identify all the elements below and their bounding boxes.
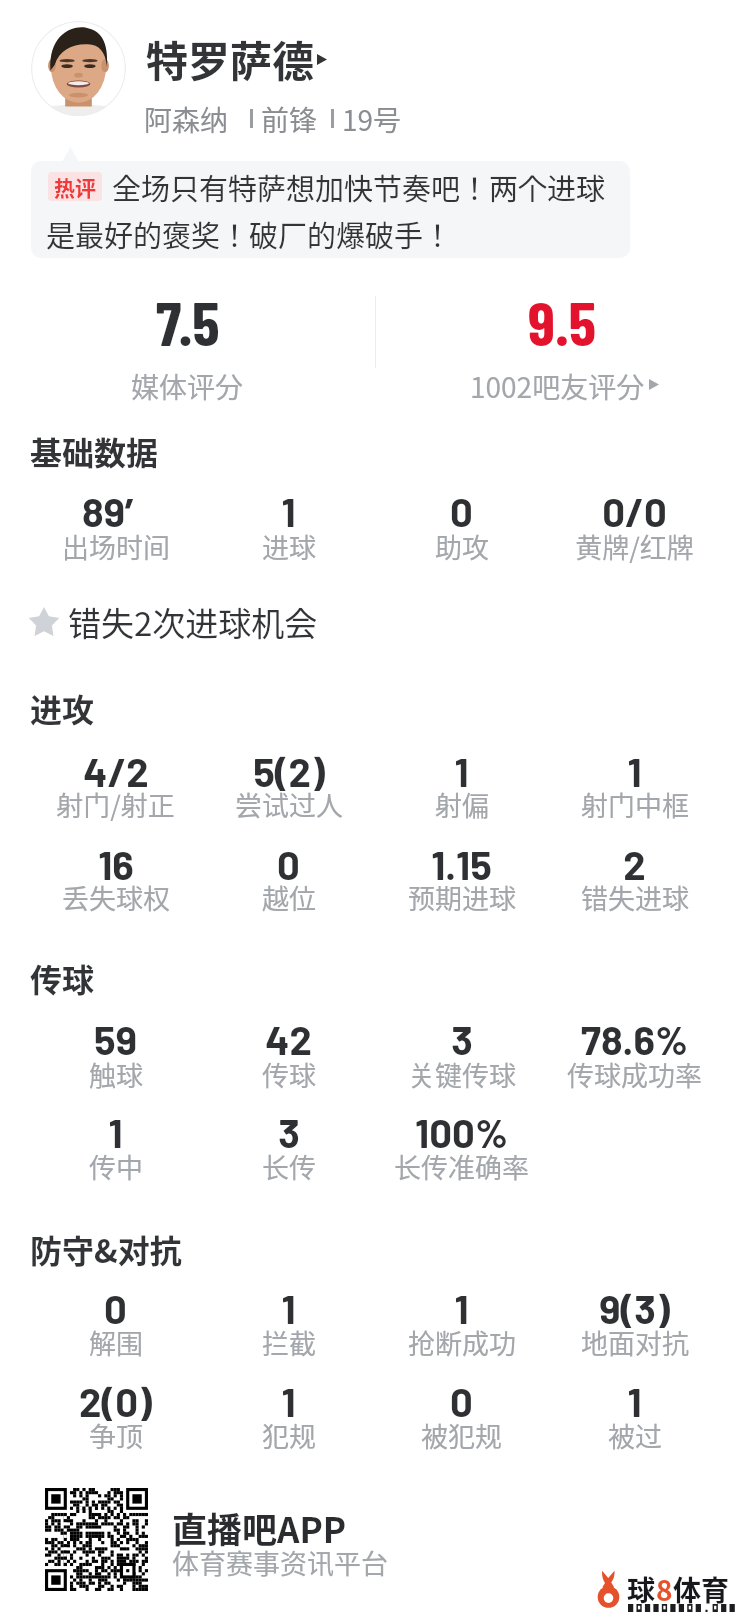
button[interactable]: 特罗萨德 [146, 28, 327, 89]
button[interactable]: Qiuba Sports logo [595, 1566, 745, 1614]
staticText: 8 [656, 1569, 673, 1610]
staticText: 42 [265, 1015, 312, 1063]
button[interactable]: 9.5 [375, 284, 750, 358]
staticText: 传中 [89, 1147, 143, 1186]
staticText: 进球 [262, 527, 316, 566]
staticText: 1 [454, 747, 469, 795]
staticText: 争顶 [89, 1416, 143, 1455]
staticText: 防守&对抗 [30, 1226, 182, 1272]
staticText: 黄牌/红牌 [575, 527, 694, 566]
staticText: 1 [281, 487, 296, 535]
staticText: 长传 [262, 1147, 316, 1186]
staticText: 全场只有特萨想加快节奏吧！两个进球 [112, 166, 606, 208]
staticText: 体育赛事资讯平台 [172, 1543, 388, 1582]
staticText: 助攻 [435, 527, 489, 566]
staticText: 特罗萨德 [146, 28, 315, 89]
staticText: 传球 [262, 1055, 316, 1094]
staticText: 基础数据 [30, 428, 159, 474]
staticText: 1 [281, 1377, 296, 1425]
staticText: 0 [450, 487, 473, 535]
staticText: 越位 [262, 878, 316, 917]
staticText: 0 [450, 1377, 473, 1425]
staticText: 59 [94, 1015, 137, 1063]
staticText: 89′ [82, 487, 149, 535]
staticText: 1 [454, 1284, 469, 1332]
staticText: 16 [98, 840, 134, 888]
staticText: 长传准确率 [394, 1147, 529, 1186]
button[interactable]: Player photo [31, 21, 126, 116]
staticText: 关键传球 [408, 1055, 516, 1094]
staticText: 0/0 [602, 487, 667, 535]
staticText: 1 [627, 1377, 642, 1425]
staticText: 射门中框 [581, 785, 689, 824]
staticText: 19号 [342, 99, 402, 140]
staticText: 射门/射正 [56, 785, 175, 824]
staticText: 预期进球 [408, 878, 516, 917]
staticText: 0 [104, 1284, 127, 1332]
staticText: 错失进球 [581, 878, 689, 917]
staticText: 3 [278, 1108, 300, 1156]
staticText: 犯规 [262, 1416, 316, 1455]
button[interactable]: 热评 [31, 161, 630, 258]
button[interactable]: 阿森纳 [144, 99, 402, 140]
staticText: 1002吧友评分 [470, 366, 645, 407]
staticText: 9(3) [599, 1284, 670, 1332]
staticText: 触球 [89, 1055, 143, 1094]
staticText: 尝试过人 [235, 785, 343, 824]
button[interactable]: 错失2次进球机会 [28, 598, 318, 646]
staticText: 地面对抗 [581, 1323, 689, 1362]
staticText: 0 [277, 840, 300, 888]
staticText: 5(2) [253, 747, 325, 795]
staticText: 被过 [608, 1416, 662, 1455]
staticText: 2 [623, 840, 646, 888]
staticText: 传球 [30, 955, 95, 1001]
button[interactable]: 7.5 [0, 284, 375, 358]
staticText: 传球成功率 [567, 1055, 702, 1094]
staticText: 错失2次进球机会 [68, 598, 318, 646]
staticText: 2(0) [79, 1377, 152, 1425]
staticText: 阿森纳 [144, 99, 229, 140]
staticText: 拦截 [262, 1323, 316, 1362]
staticText: 100% [415, 1108, 508, 1156]
staticText: 78.6% [581, 1015, 688, 1063]
staticText: 9.5 [528, 284, 597, 358]
staticText: 出场时间 [62, 527, 170, 566]
staticText: 媒体评分 [131, 366, 244, 407]
staticText: 1 [627, 747, 642, 795]
staticText: 1 [281, 1284, 296, 1332]
staticText: 3 [451, 1015, 473, 1063]
staticText: 前锋 [261, 99, 318, 140]
staticText: 体育 [673, 1569, 730, 1610]
staticText: 射偏 [435, 785, 489, 824]
staticText: 被犯规 [421, 1416, 502, 1455]
staticText: 抢断成功 [408, 1323, 516, 1362]
staticText: 7.5 [156, 284, 220, 358]
staticText: 直播吧APP [172, 1502, 347, 1553]
staticText: 进攻 [30, 685, 95, 731]
staticText: 4/2 [83, 747, 149, 795]
staticText: 1 [108, 1108, 123, 1156]
staticText: 丢失球权 [62, 878, 170, 917]
staticText: 球 [627, 1569, 656, 1610]
staticText: 解围 [89, 1323, 143, 1362]
staticText: 1.15 [431, 840, 492, 888]
staticText: 是最好的褒奖！破厂的爆破手！ [46, 213, 453, 255]
staticText: 热评 [54, 172, 96, 201]
